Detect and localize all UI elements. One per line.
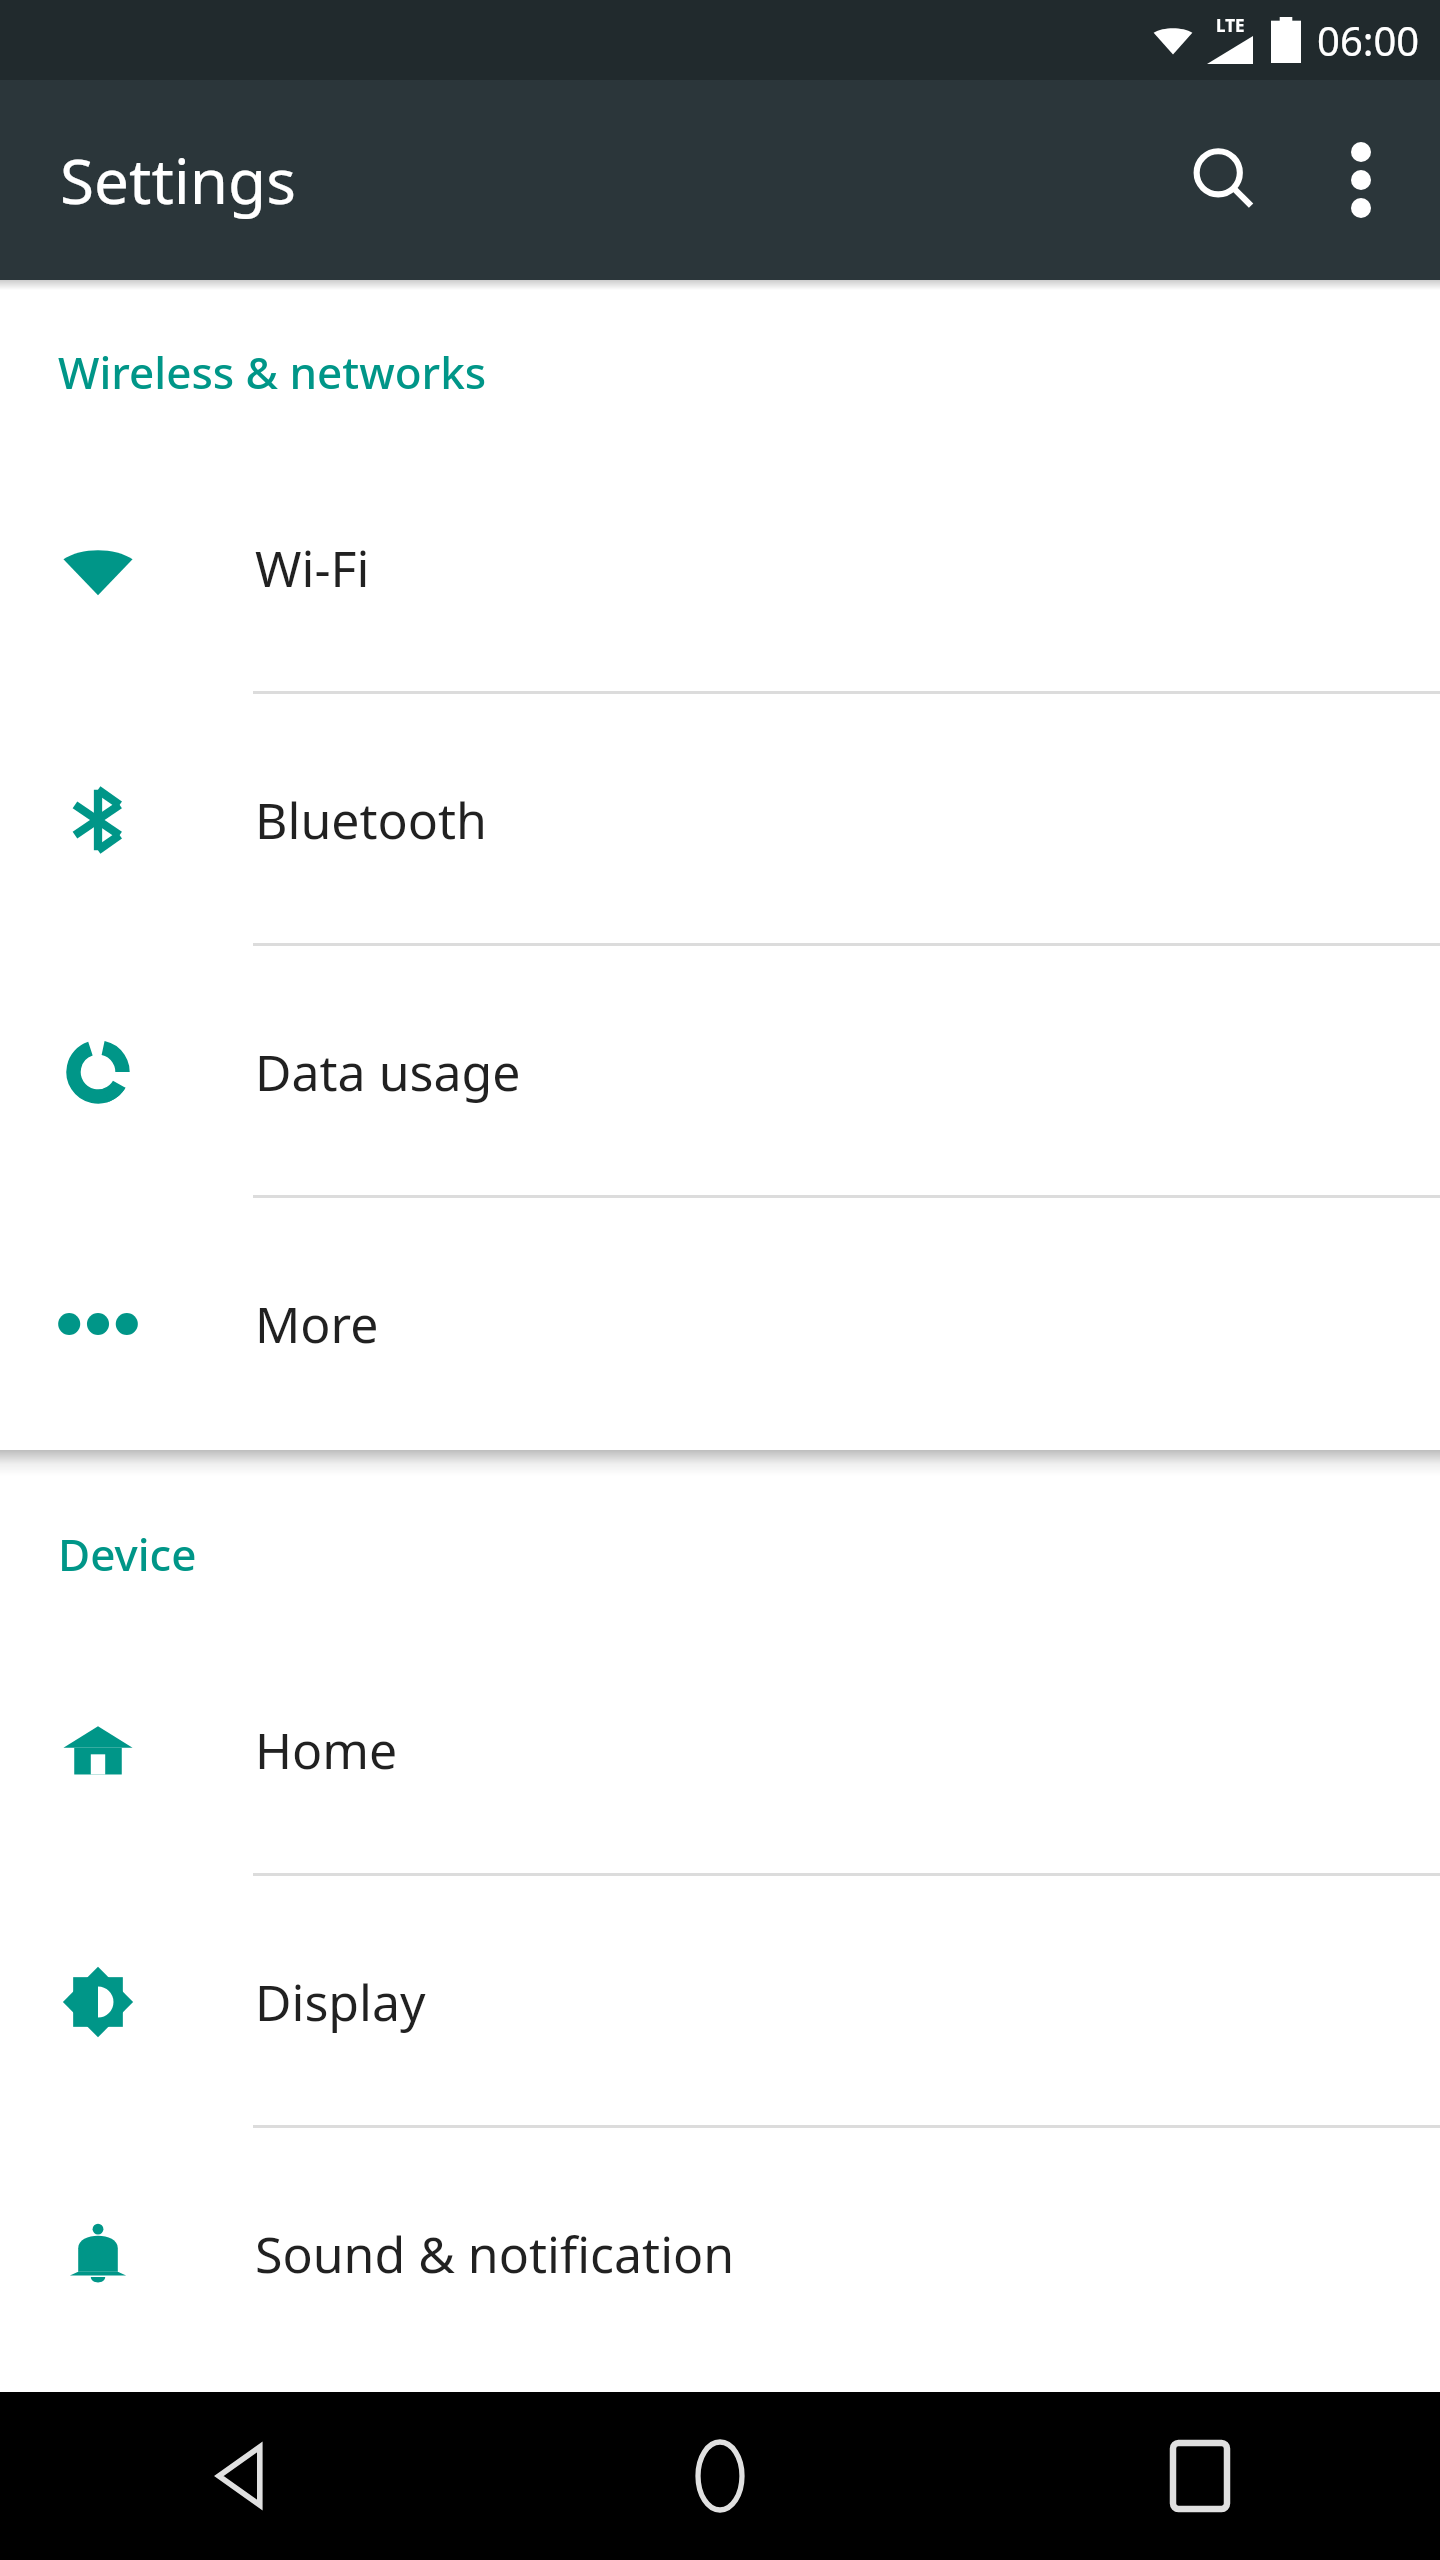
button[interactable]: Back bbox=[0, 2392, 480, 2560]
staticText: More bbox=[255, 1290, 379, 1358]
button[interactable]: Search bbox=[1152, 108, 1296, 252]
button[interactable]: Display bbox=[0, 1876, 1440, 2128]
button[interactable]: Recent apps bbox=[960, 2392, 1440, 2560]
button[interactable]: Sound & notification bbox=[0, 2128, 1440, 2380]
button[interactable]: Home bbox=[0, 1624, 1440, 1876]
staticText: Home bbox=[255, 1716, 398, 1784]
button[interactable]: Bluetooth bbox=[0, 694, 1440, 946]
button[interactable]: Home bbox=[480, 2392, 960, 2560]
staticText: Wireless & networks bbox=[58, 342, 487, 402]
staticText: Wi-Fi bbox=[255, 534, 370, 602]
button[interactable]: Wi-Fi bbox=[0, 442, 1440, 694]
staticText: Device bbox=[58, 1524, 197, 1584]
staticText: 06:00 bbox=[1317, 13, 1420, 67]
staticText: Sound & notification bbox=[255, 2220, 735, 2288]
staticText: Settings bbox=[60, 138, 296, 222]
staticText: LTE bbox=[1216, 14, 1245, 37]
button[interactable]: More options bbox=[1296, 115, 1426, 245]
button[interactable]: Data usage bbox=[0, 946, 1440, 1198]
staticText: Data usage bbox=[255, 1038, 521, 1106]
button[interactable]: More bbox=[0, 1198, 1440, 1450]
staticText: Display bbox=[255, 1968, 426, 2036]
staticText: Bluetooth bbox=[255, 786, 487, 854]
